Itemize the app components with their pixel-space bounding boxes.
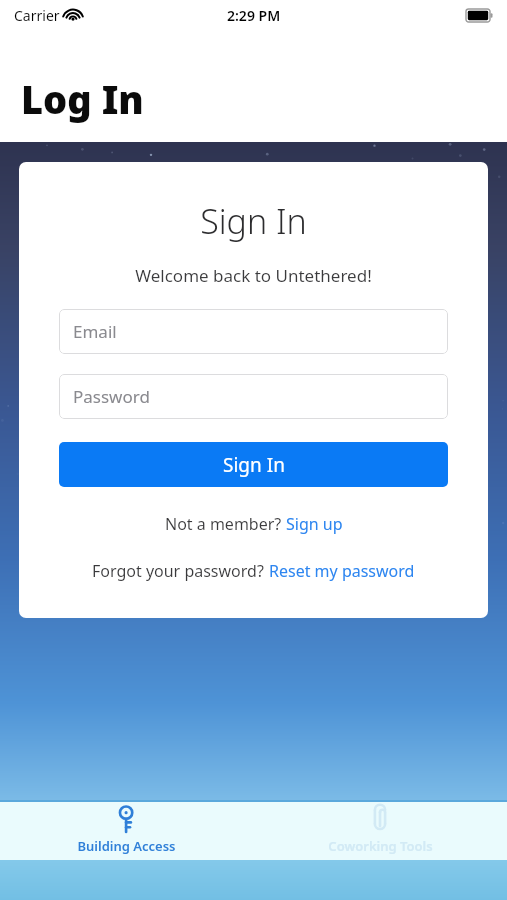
staticText: Reset my password	[269, 560, 415, 582]
button[interactable]: Not a member?	[159, 510, 349, 538]
button[interactable]: Password	[59, 374, 448, 419]
staticText: Building Access	[77, 837, 176, 855]
staticText: Sign In	[223, 452, 285, 478]
button[interactable]: Email	[59, 309, 448, 354]
staticText: Forgot your password?	[92, 560, 269, 582]
staticText: Welcome back to Untethered!	[135, 264, 372, 287]
staticText: Carrier	[14, 6, 60, 25]
staticText: Password	[73, 385, 150, 408]
staticText: Sign up	[286, 513, 343, 535]
staticText: Coworking Tools	[328, 837, 433, 855]
button[interactable]: Forgot your password?	[86, 557, 421, 585]
staticText: Sign In	[200, 198, 307, 244]
staticText: Not a member?	[165, 513, 286, 535]
staticText: Email	[73, 320, 117, 343]
button[interactable]: Coworking Tools	[253, 800, 507, 860]
staticText: Log In	[21, 73, 144, 125]
button[interactable]: Building Access	[0, 800, 253, 860]
staticText: 2:29 PM	[227, 6, 281, 25]
button[interactable]: Sign In	[59, 442, 448, 487]
